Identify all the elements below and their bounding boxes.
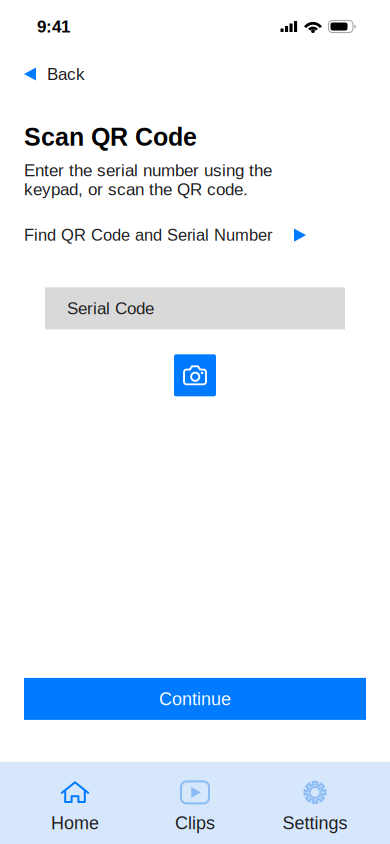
staticText: Clips bbox=[175, 813, 215, 833]
staticText: Scan QR Code bbox=[24, 123, 197, 151]
staticText: keypad, or scan the QR code. bbox=[24, 180, 248, 199]
button[interactable]: Settings bbox=[255, 762, 375, 844]
button[interactable]: Back bbox=[0, 56, 101, 91]
button[interactable]: Continue bbox=[24, 678, 366, 720]
staticText: Settings bbox=[282, 813, 347, 833]
staticText: Back bbox=[47, 64, 85, 83]
staticText: Enter the serial number using the bbox=[24, 161, 272, 180]
button[interactable]: Scan QR code bbox=[174, 354, 216, 396]
staticText: 9:41 bbox=[37, 17, 70, 36]
staticText: Continue bbox=[159, 689, 231, 709]
staticText: Find QR Code and Serial Number bbox=[24, 226, 272, 244]
staticText: Serial Code bbox=[67, 299, 154, 318]
staticText: Home bbox=[51, 813, 99, 833]
button[interactable]: Clips bbox=[135, 762, 255, 844]
button[interactable]: Home bbox=[15, 762, 135, 844]
button[interactable]: Find QR Code and Serial Number bbox=[24, 221, 366, 249]
